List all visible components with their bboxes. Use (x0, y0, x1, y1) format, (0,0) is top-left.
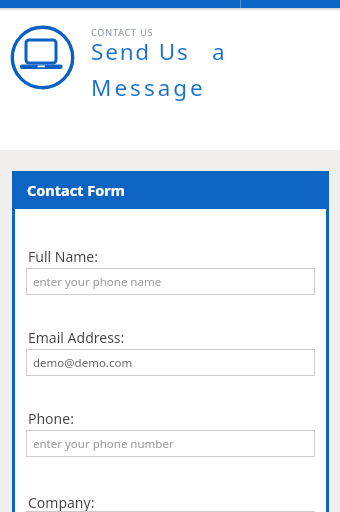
button[interactable]: enter your phone name (26, 268, 315, 295)
button[interactable]: Contact Form (12, 171, 329, 209)
staticText: enter your phone name (33, 274, 162, 290)
staticText: Company: (28, 493, 95, 512)
button[interactable]: demo@demo.com (26, 349, 315, 376)
staticText: enter your phone number (33, 436, 174, 452)
staticText: Contact Form (27, 180, 125, 200)
staticText: Phone: (28, 409, 74, 428)
button[interactable]: enter your phone number (26, 430, 315, 457)
staticText: Email Address: (28, 328, 125, 347)
staticText: CONTACT US (91, 26, 154, 38)
staticText: Send Us (91, 36, 190, 67)
staticText: Message (91, 72, 206, 103)
staticText: demo@demo.com (33, 355, 133, 371)
staticText: a (212, 36, 225, 67)
staticText: Full Name: (28, 247, 99, 266)
